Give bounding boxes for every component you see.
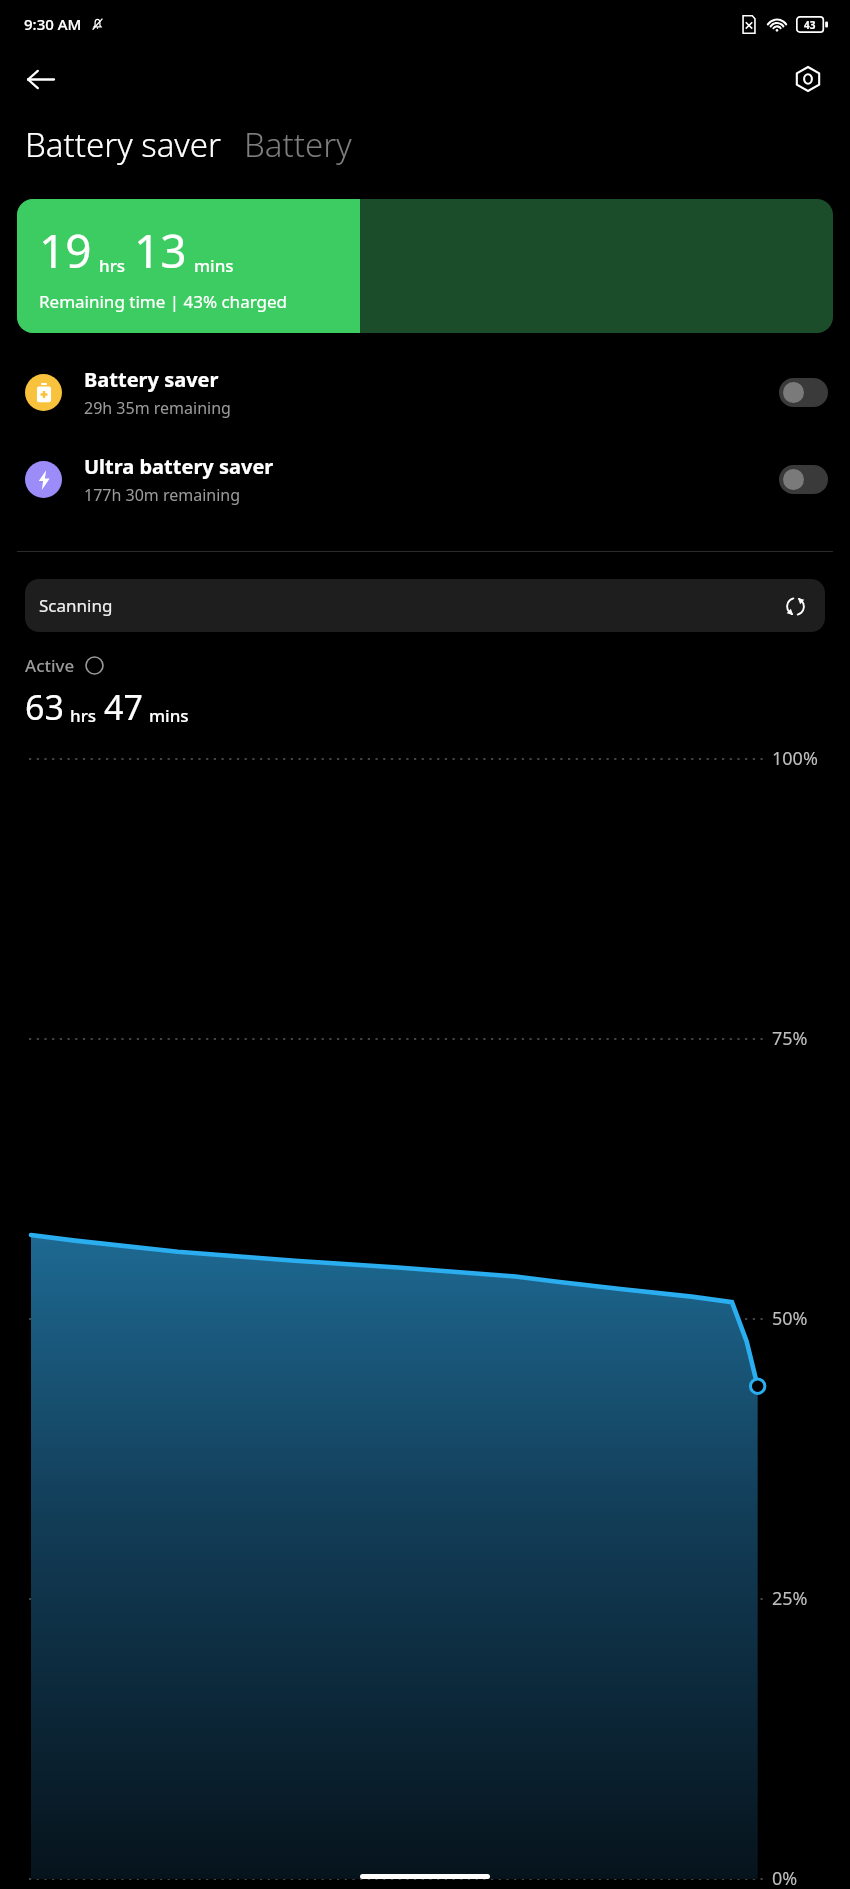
button[interactable]: Battery saver <box>0 366 850 419</box>
button[interactable]: Settings <box>782 53 834 105</box>
button[interactable]: Refresh <box>779 590 811 622</box>
button[interactable]: Ultra battery saver <box>0 453 850 506</box>
staticText: Battery saver <box>84 366 219 393</box>
button[interactable]: Battery saver <box>25 122 222 167</box>
button[interactable]: 19 <box>17 199 833 333</box>
staticText: 29h 35m remaining <box>84 397 231 419</box>
button[interactable]: Scanning <box>25 579 825 632</box>
staticText: 13 <box>134 219 187 282</box>
button[interactable]: Battery saver toggle <box>779 378 828 407</box>
staticText: 25% <box>772 1586 808 1611</box>
staticText: hrs <box>99 254 126 277</box>
staticText: 43 <box>804 18 816 32</box>
button[interactable]: Active <box>25 654 104 677</box>
staticText: 50% <box>772 1306 808 1331</box>
staticText: Remaining time | 43% charged <box>39 290 288 313</box>
staticText: 75% <box>772 1026 808 1051</box>
staticText: 9:30 AM <box>24 14 82 34</box>
staticText: 47 <box>104 684 143 730</box>
staticText: Battery <box>244 122 352 167</box>
staticText: mins <box>194 254 234 277</box>
staticText: Battery saver <box>25 122 222 167</box>
staticText: Ultra battery saver <box>84 453 274 480</box>
button[interactable]: Back <box>14 53 66 105</box>
staticText: 0% <box>772 1866 798 1889</box>
button[interactable]: Ultra battery saver toggle <box>779 465 828 494</box>
staticText: Active <box>25 654 75 677</box>
button[interactable]: Battery <box>244 122 352 167</box>
staticText: 63 <box>25 684 64 730</box>
staticText: mins <box>149 704 189 727</box>
staticText: 177h 30m remaining <box>84 484 241 506</box>
staticText: 19 <box>39 219 92 282</box>
staticText: 100% <box>772 746 818 771</box>
staticText: Scanning <box>39 594 113 617</box>
staticText: hrs <box>70 704 97 727</box>
